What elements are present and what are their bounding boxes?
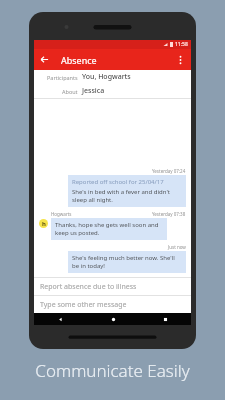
staticText: Yesterday 07:24	[152, 168, 186, 174]
button[interactable]: Thanks, hope she gets well soon and keep…	[51, 218, 167, 240]
staticText: You, Hogwarts	[82, 72, 131, 82]
button[interactable]: Home	[87, 313, 139, 325]
staticText: 11:58	[175, 41, 188, 48]
staticText: She's in bed with a fever and didn't sle…	[72, 188, 182, 204]
staticText: Absence	[61, 54, 97, 66]
staticText: Participants	[47, 74, 78, 81]
button[interactable]: Type some other message	[34, 296, 191, 313]
button[interactable]: Recent apps	[139, 313, 191, 325]
staticText: Thanks, hope she gets well soon and keep…	[55, 221, 163, 237]
button[interactable]: Reported off school for 25/04/17	[68, 175, 186, 207]
button[interactable]: Back	[34, 49, 55, 70]
button[interactable]: Back	[34, 313, 87, 325]
staticText: Report absence due to illness	[40, 282, 137, 292]
staticText: Type some other message	[40, 300, 127, 310]
staticText: Reported off school for 25/04/17	[72, 178, 164, 186]
button[interactable]: She's feeling much better now. She'll be…	[68, 251, 186, 273]
staticText: Jessica	[82, 86, 105, 96]
staticText: Just now	[168, 244, 186, 250]
staticText: She's feeling much better now. She'll be…	[72, 254, 182, 270]
button[interactable]: More options	[170, 49, 191, 70]
button[interactable]: Report absence due to illness	[34, 278, 191, 295]
staticText: Hogwarts	[51, 211, 72, 217]
staticText: Communicate Easily	[35, 359, 190, 382]
staticText: About	[62, 88, 78, 95]
staticText: Yesterday 07:38	[152, 211, 186, 217]
staticText: h	[42, 220, 46, 228]
